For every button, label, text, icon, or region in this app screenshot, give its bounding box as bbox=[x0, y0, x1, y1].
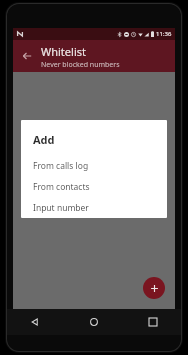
staticText: Add bbox=[33, 132, 55, 147]
button[interactable]: Back bbox=[25, 312, 45, 332]
staticText: Never blocked numbers bbox=[41, 60, 120, 70]
button[interactable]: Home bbox=[84, 312, 104, 332]
button[interactable]: From calls log bbox=[21, 155, 167, 176]
button[interactable]: From contacts bbox=[21, 176, 167, 197]
button[interactable]: Input number bbox=[21, 197, 167, 218]
staticText: From calls log bbox=[33, 160, 89, 172]
staticText: Whitelist bbox=[41, 44, 86, 59]
staticText: Input number bbox=[33, 202, 89, 214]
button[interactable]: Recents bbox=[143, 312, 163, 332]
staticText: 11:36 bbox=[156, 30, 172, 38]
button[interactable]: Add bbox=[143, 277, 165, 299]
button[interactable]: Back bbox=[17, 46, 37, 66]
staticText: From contacts bbox=[33, 181, 90, 193]
